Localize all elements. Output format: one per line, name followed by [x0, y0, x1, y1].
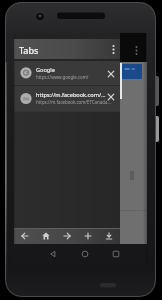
button[interactable] — [109, 42, 118, 56]
staticText: Tabs — [19, 44, 39, 56]
staticText: https://m.facebook.com/ETCanada... — [36, 99, 111, 105]
button[interactable]: https://m.facebook.com/... — [14, 86, 120, 112]
button[interactable] — [14, 228, 35, 244]
button[interactable] — [77, 228, 98, 244]
button[interactable] — [122, 64, 142, 79]
button[interactable]: Google — [14, 61, 120, 85]
button[interactable] — [56, 228, 77, 244]
button[interactable] — [106, 92, 116, 102]
staticText: https://m.facebook.com/... — [36, 91, 106, 99]
button[interactable] — [48, 249, 58, 259]
staticText: https://www.google.com/ — [36, 74, 89, 80]
button[interactable] — [98, 228, 119, 244]
button[interactable] — [80, 249, 90, 259]
staticText: Google — [36, 66, 55, 74]
button[interactable] — [35, 228, 56, 244]
button[interactable] — [106, 69, 116, 79]
button[interactable] — [111, 249, 121, 259]
